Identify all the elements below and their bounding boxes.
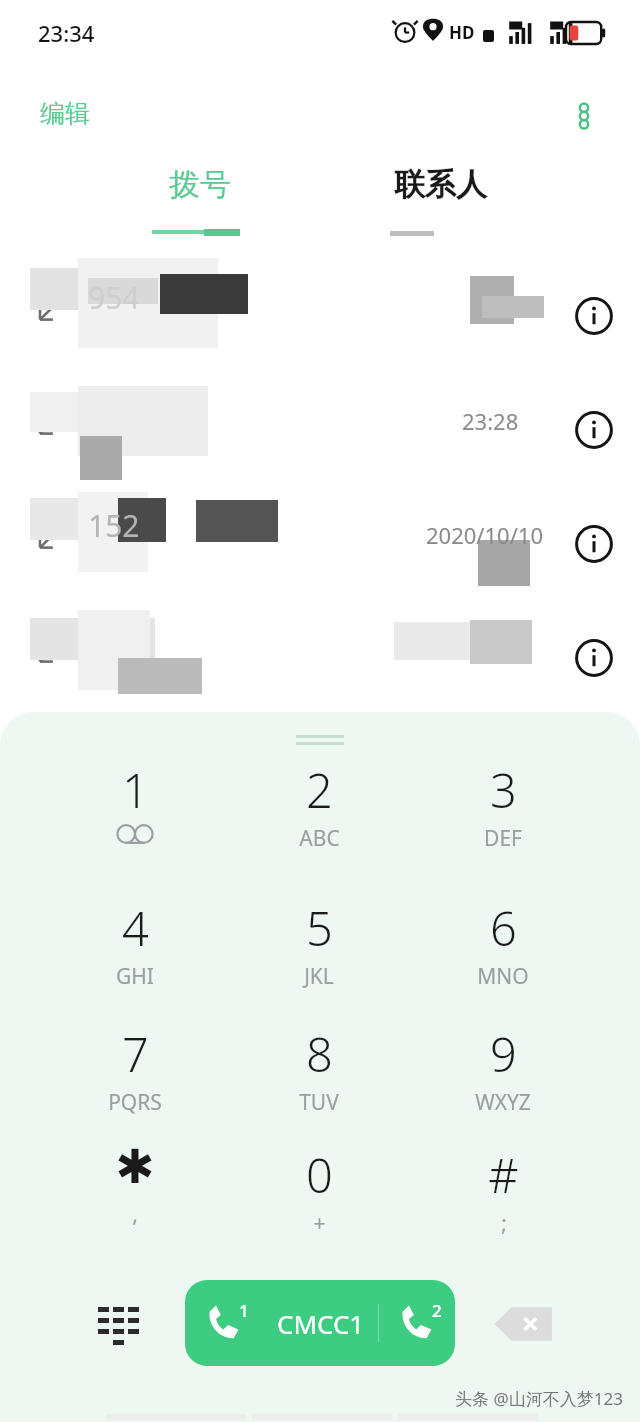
button[interactable]: Delete	[490, 1296, 562, 1352]
staticText: 23:28	[462, 406, 519, 436]
button[interactable]: 7	[60, 1022, 210, 1140]
staticText: 8	[306, 1022, 333, 1086]
staticText: ✱	[115, 1143, 155, 1194]
staticText: 152	[88, 505, 140, 546]
staticText: TUV	[299, 1088, 339, 1117]
button[interactable]	[0, 270, 640, 384]
button[interactable]: Call details	[566, 630, 622, 686]
button[interactable]: ✱	[60, 1143, 210, 1261]
staticText: 2	[306, 758, 333, 822]
button[interactable]	[0, 498, 640, 612]
button[interactable]: 1	[60, 758, 210, 876]
button[interactable]: 2	[244, 758, 394, 876]
staticText: GHI	[116, 962, 154, 991]
button[interactable]: 3	[428, 758, 578, 876]
staticText: 2020/10/10	[426, 520, 544, 550]
staticText: 954	[88, 277, 140, 318]
staticText: #	[488, 1143, 519, 1207]
staticText: +	[313, 1209, 326, 1238]
button[interactable]: 0	[244, 1143, 394, 1261]
staticText: PQRS	[108, 1088, 162, 1117]
button[interactable]: Call details	[566, 402, 622, 458]
button[interactable]: 拨号	[120, 165, 280, 235]
button[interactable]: 5	[244, 896, 394, 1014]
button[interactable]: 联系人	[360, 165, 520, 235]
staticText: DEF	[484, 824, 522, 853]
staticText: 3	[490, 758, 517, 822]
button[interactable]: 编辑	[28, 90, 102, 137]
staticText: 0	[306, 1143, 333, 1207]
staticText: ,	[132, 1200, 138, 1229]
staticText: 编辑	[40, 98, 90, 129]
staticText: 拨号	[169, 165, 231, 204]
button[interactable]: #	[428, 1143, 578, 1261]
staticText: HD	[449, 21, 475, 44]
staticText: 7	[122, 1022, 149, 1086]
staticText: WXYZ	[475, 1088, 531, 1117]
button[interactable]: 6	[428, 896, 578, 1014]
staticText: 6	[490, 896, 517, 960]
staticText: 4	[122, 896, 149, 960]
button[interactable]: 1	[185, 1280, 455, 1366]
staticText: 联系人	[394, 165, 487, 204]
button[interactable]: More options	[558, 90, 610, 142]
staticText: 9	[490, 1022, 517, 1086]
button[interactable]	[0, 612, 640, 726]
button[interactable]: Call details	[566, 288, 622, 344]
staticText: JKL	[304, 962, 334, 991]
button[interactable]: 8	[244, 1022, 394, 1140]
button[interactable]: 4	[60, 896, 210, 1014]
staticText: 23:34	[38, 18, 95, 48]
staticText: 1	[239, 1299, 249, 1322]
button[interactable]	[0, 384, 640, 498]
staticText: ;	[501, 1209, 507, 1238]
staticText: CMCC1	[277, 1306, 365, 1341]
staticText: ABC	[299, 824, 340, 853]
staticText: 2	[432, 1299, 442, 1322]
staticText: 5	[306, 896, 333, 960]
staticText: MNO	[477, 962, 529, 991]
staticText: 头条 @山河不入梦123	[455, 1387, 623, 1410]
button[interactable]: Keypad	[84, 1292, 146, 1354]
button[interactable]: 9	[428, 1022, 578, 1140]
staticText: 1	[122, 758, 149, 822]
button[interactable]: Call details	[566, 516, 622, 572]
